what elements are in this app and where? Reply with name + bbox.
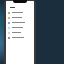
- button[interactable]: [6, 15, 34, 20]
- button[interactable]: [6, 30, 34, 35]
- button[interactable]: [6, 35, 34, 40]
- button[interactable]: [6, 10, 34, 15]
- button[interactable]: [6, 5, 34, 10]
- button[interactable]: [6, 25, 34, 30]
- button[interactable]: [6, 20, 34, 25]
